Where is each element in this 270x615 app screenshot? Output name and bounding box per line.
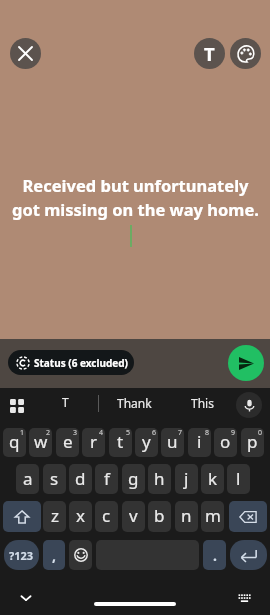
button[interactable]: d (69, 464, 92, 494)
staticText: z (51, 504, 59, 527)
staticText: x (76, 504, 85, 527)
staticText: 3 (73, 428, 78, 438)
staticText: T (62, 394, 69, 410)
staticText: t (117, 430, 124, 453)
staticText: . (213, 546, 217, 565)
staticText: v (129, 504, 138, 527)
button[interactable]: Switch keyboard (234, 588, 254, 608)
staticText: q (9, 430, 20, 453)
staticText: j (184, 467, 189, 490)
button[interactable]: s (43, 464, 66, 494)
staticText: ?123 (9, 548, 34, 563)
staticText: n (181, 504, 192, 527)
button[interactable]: x (69, 501, 92, 532)
button[interactable]: q (3, 428, 26, 457)
staticText: p (247, 430, 258, 453)
staticText: 0 (258, 428, 263, 438)
button[interactable]: T (55, 392, 75, 412)
button[interactable]: Thank (108, 392, 160, 414)
button[interactable]: c (95, 501, 118, 532)
button[interactable]: Status (6 excluded) (8, 350, 134, 375)
button[interactable]: i (188, 428, 211, 457)
staticText: o (220, 430, 231, 453)
button[interactable]: Shift (3, 501, 41, 532)
button[interactable]: l (227, 464, 250, 494)
button[interactable]: g (122, 464, 145, 494)
button[interactable]: o (214, 428, 237, 457)
staticText: i (197, 430, 202, 453)
button[interactable]: f (95, 464, 118, 494)
button[interactable]: , (43, 540, 65, 570)
button[interactable]: Toolbar (5, 394, 28, 417)
button[interactable]: Backspace (229, 501, 267, 532)
staticText: 7 (178, 428, 183, 438)
staticText: f (104, 467, 110, 490)
staticText: 8 (205, 428, 210, 438)
staticText: l (236, 467, 241, 490)
button[interactable]: Voice input (236, 392, 262, 418)
button[interactable]: h (148, 464, 171, 494)
button[interactable]: Send (228, 345, 264, 381)
button[interactable]: r (82, 428, 105, 457)
button[interactable]: t (109, 428, 132, 457)
staticText: Status (6 excluded) (34, 356, 128, 370)
staticText: This (191, 395, 214, 411)
button[interactable]: v (122, 501, 145, 532)
staticText: w (34, 430, 48, 453)
staticText: m (205, 504, 221, 527)
button[interactable]: This (180, 392, 224, 414)
button[interactable]: Close (10, 38, 41, 69)
button[interactable]: n (175, 501, 198, 532)
staticText: T (204, 41, 215, 66)
button[interactable]: j (175, 464, 198, 494)
staticText: h (154, 467, 165, 490)
button[interactable]: w (29, 428, 52, 457)
staticText: 9 (231, 428, 236, 438)
staticText: 1 (20, 428, 25, 438)
staticText: k (208, 467, 218, 490)
staticText: 5 (126, 428, 131, 438)
button[interactable]: Hide keyboard (14, 586, 38, 610)
button[interactable]: . (203, 540, 226, 570)
staticText: Thank (117, 395, 152, 411)
button[interactable]: k (201, 464, 224, 494)
staticText: g (128, 467, 139, 490)
button[interactable]: u (161, 428, 184, 457)
button[interactable]: z (43, 501, 66, 532)
staticText: u (167, 430, 178, 453)
staticText: b (154, 504, 165, 527)
staticText: a (23, 467, 33, 490)
button[interactable]: b (148, 501, 171, 532)
button[interactable]: p (241, 428, 264, 457)
button[interactable]: e (56, 428, 79, 457)
button[interactable]: ?123 (4, 540, 39, 570)
button[interactable]: m (201, 501, 224, 532)
staticText: r (90, 430, 98, 453)
staticText: 4 (99, 428, 104, 438)
staticText: c (102, 504, 111, 527)
button[interactable]: y (135, 428, 158, 457)
staticText: e (63, 430, 73, 453)
button[interactable]: Enter (230, 540, 267, 570)
button[interactable]: Text style (194, 38, 225, 69)
staticText: d (75, 467, 86, 490)
button[interactable]: Emoji (69, 540, 92, 570)
staticText: y (142, 430, 151, 453)
staticText: 2 (46, 428, 51, 438)
staticText: Received but unfortunately got missing o… (12, 174, 259, 221)
staticText: s (50, 467, 59, 490)
button[interactable]: a (16, 464, 39, 494)
staticText: 6 (152, 428, 157, 438)
staticText: , (52, 546, 56, 565)
button[interactable]: Background colour (230, 38, 261, 69)
